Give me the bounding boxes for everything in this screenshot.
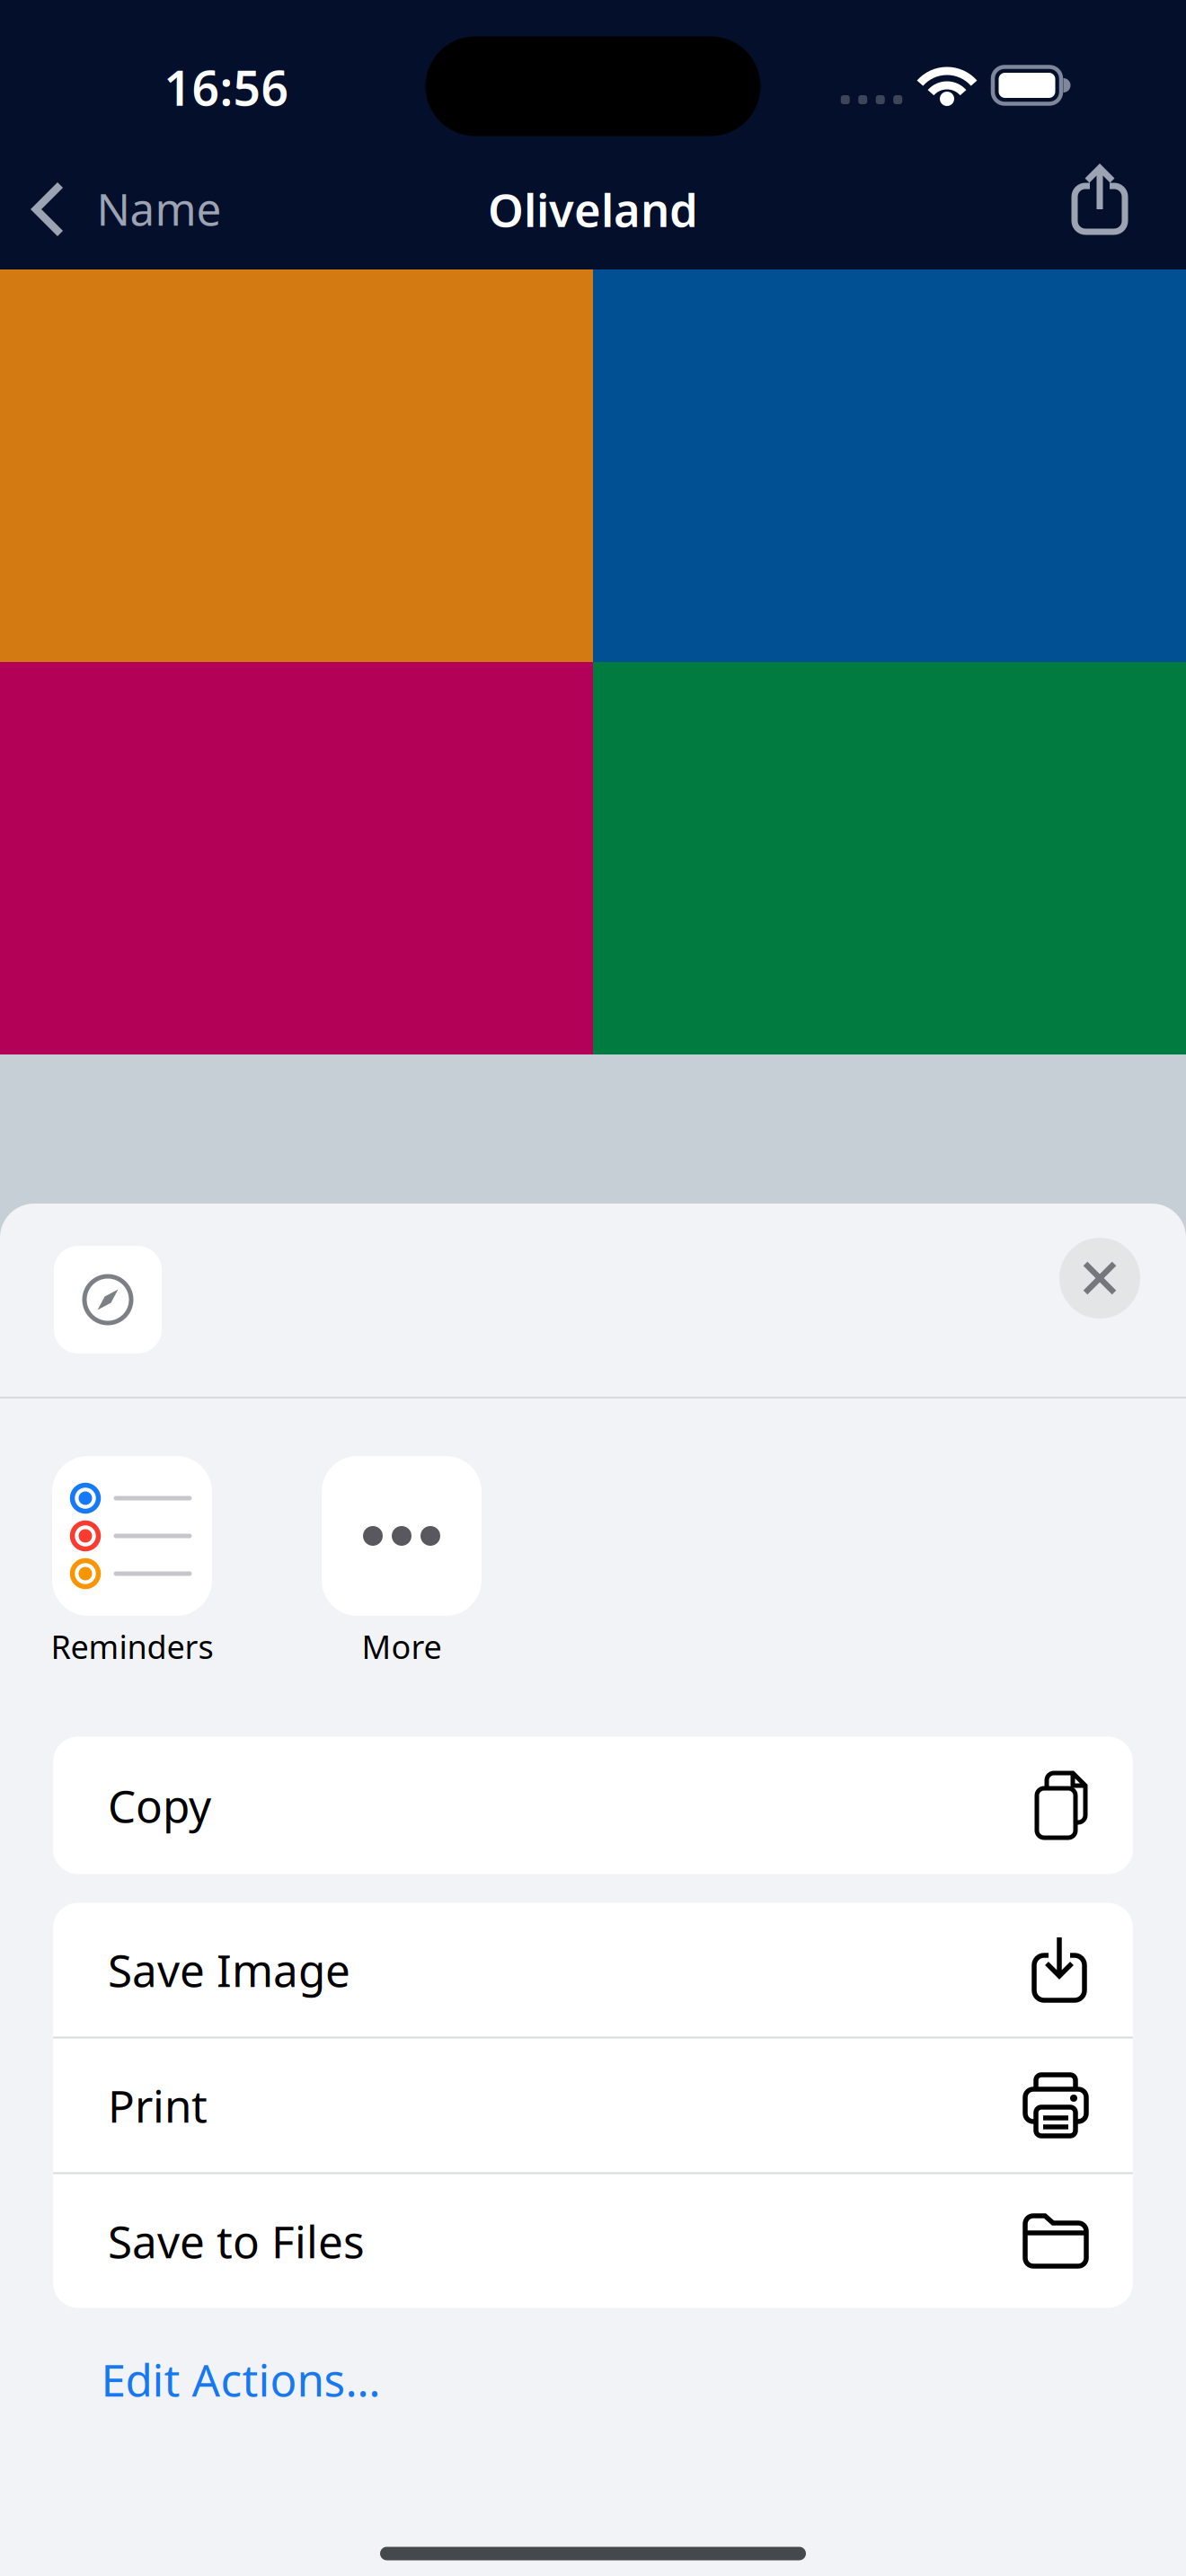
button[interactable]: Back xyxy=(22,167,247,251)
button[interactable]: Edit Actions… xyxy=(101,2350,381,2409)
staticText: Reminders xyxy=(51,1625,213,1668)
staticText: 16:56 xyxy=(164,55,289,119)
staticText: Oliveland xyxy=(488,179,698,240)
button[interactable]: Share xyxy=(1064,168,1136,249)
button[interactable]: Save to Files xyxy=(53,2174,1133,2308)
button[interactable]: Save Image xyxy=(53,1903,1133,2037)
staticText: Edit Actions… xyxy=(101,2350,381,2409)
staticText: Name xyxy=(97,179,221,238)
staticText: Copy xyxy=(108,1776,211,1835)
button[interactable]: More xyxy=(291,1456,512,1681)
staticText: Print xyxy=(108,2076,208,2135)
button[interactable]: Copy xyxy=(53,1738,1133,1872)
staticText: Save Image xyxy=(108,1940,350,1999)
staticText: More xyxy=(362,1625,442,1668)
staticText: Save to Files xyxy=(108,2212,365,2270)
button[interactable]: Reminders xyxy=(22,1456,243,1681)
button[interactable]: Print xyxy=(53,2038,1133,2172)
button[interactable]: Close xyxy=(1059,1238,1140,1319)
